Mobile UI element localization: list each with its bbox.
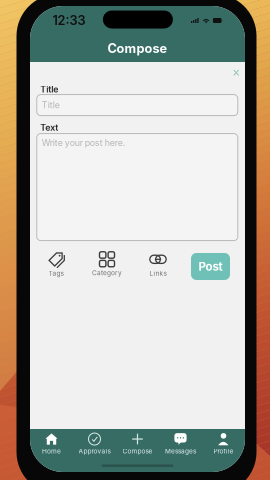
button[interactable]: Profile [202, 433, 245, 455]
staticText: Title [40, 84, 58, 95]
button[interactable]: Compose [116, 433, 159, 455]
staticText: Write your post here. [42, 138, 126, 148]
button[interactable]: Messages [159, 433, 202, 455]
button[interactable]: Category [81, 252, 132, 276]
staticText: Approvals [78, 447, 110, 455]
staticText: Home [42, 447, 61, 455]
staticText: Title [42, 100, 60, 110]
staticText: Messages [165, 447, 196, 455]
staticText: Post [198, 260, 222, 273]
staticText: Text [40, 122, 58, 133]
button[interactable]: Close [229, 66, 243, 80]
staticText: Compose [122, 447, 152, 455]
staticText: 12:33 [52, 13, 85, 28]
staticText: Profile [213, 447, 233, 455]
staticText: Links [149, 269, 166, 277]
staticText: Tags [48, 269, 63, 277]
staticText: Category [92, 269, 122, 277]
staticText: Compose [107, 41, 167, 56]
button[interactable]: Tags [30, 252, 81, 276]
button[interactable]: Links [132, 252, 183, 276]
button[interactable]: Home [30, 433, 73, 455]
button[interactable]: Approvals [73, 433, 116, 455]
button[interactable]: Post [191, 253, 230, 280]
